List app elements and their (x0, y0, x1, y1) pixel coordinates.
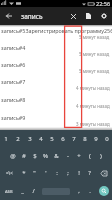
staticText: запись#7 (1, 78, 26, 85)
staticText: 7 (72, 135, 76, 143)
button[interactable]: 4 (35, 130, 46, 147)
button[interactable]: . (84, 182, 95, 200)
button[interactable]: запись#6 (0, 59, 112, 76)
button[interactable]: Backspace (95, 164, 112, 182)
staticText: ) (100, 152, 102, 160)
staticText: 3 минуты назад (76, 121, 110, 127)
button[interactable]: / (28, 182, 39, 200)
staticText: : (56, 169, 58, 177)
button[interactable]: 0 (101, 130, 112, 147)
staticText: , (78, 187, 80, 195)
button[interactable]: Search (99, 186, 109, 196)
staticText: " (33, 169, 36, 177)
staticText: - (67, 152, 69, 160)
staticText: _ (21, 187, 24, 195)
button[interactable]: АБВ (0, 182, 17, 200)
staticText: ( (89, 152, 91, 160)
button[interactable]: ! (73, 164, 84, 182)
staticText: запись#5Зарегистрировать программу256:..… (1, 27, 112, 34)
button[interactable]: 1 (0, 130, 12, 147)
button[interactable]: ) (95, 147, 106, 164)
staticText: & (54, 152, 59, 160)
staticText: 4 минуты назад (76, 103, 110, 109)
staticText: запись#8 (1, 96, 26, 103)
button[interactable]: 5 (46, 130, 57, 147)
button[interactable]: : (51, 164, 62, 182)
staticText: 5 минут назад (79, 51, 110, 57)
staticText: @ (10, 152, 16, 160)
staticText: =\< (6, 170, 13, 176)
button[interactable]: запись#4 (0, 42, 112, 59)
button[interactable]: 9 (90, 130, 101, 147)
staticText: ' (45, 169, 47, 177)
staticText: ; (67, 169, 69, 177)
staticText: / (32, 187, 35, 195)
button[interactable]: Notes (83, 7, 93, 25)
staticText: 6 (61, 135, 65, 143)
button[interactable]: , (73, 182, 84, 200)
staticText: % (43, 152, 48, 160)
staticText: 0 (105, 135, 109, 143)
button[interactable]: ? (84, 164, 95, 182)
staticText: 9 (94, 135, 98, 143)
staticText: 2 (16, 135, 20, 143)
staticText: запись (21, 12, 43, 21)
button[interactable]: % (40, 147, 51, 164)
button[interactable]: + (73, 147, 84, 164)
staticText: 8 (83, 135, 87, 143)
staticText: + (77, 152, 81, 160)
button[interactable]: Back (0, 7, 18, 25)
button[interactable]: @ (7, 147, 18, 164)
button[interactable]: # (18, 147, 29, 164)
button[interactable]: 6 (57, 130, 68, 147)
staticText: ! (78, 169, 80, 177)
button[interactable]: запись#7 (0, 76, 112, 94)
button[interactable]: запись#8 (0, 94, 112, 112)
button[interactable]: запись#9 (0, 112, 112, 130)
staticText: 4 минуты назад (76, 85, 110, 91)
button[interactable]: - (62, 147, 73, 164)
staticText: 22:56 (96, 0, 111, 7)
staticText: 5 минут назад (79, 68, 110, 74)
staticText: 4 (39, 135, 43, 143)
button[interactable]: 8 (79, 130, 90, 147)
button[interactable]: 3 (24, 130, 35, 147)
staticText: $ (33, 152, 37, 160)
button[interactable]: запись#5Зарегистрировать программу256:..… (0, 25, 112, 42)
staticText: ? (88, 169, 91, 177)
staticText: 5 (50, 135, 54, 143)
staticText: АБВ (5, 189, 13, 194)
button[interactable]: 7 (68, 130, 79, 147)
staticText: * (22, 169, 26, 177)
staticText: # (22, 152, 26, 160)
staticText: запись#9 (1, 114, 26, 121)
staticText: запись#4 (1, 44, 26, 51)
button[interactable]: * (18, 164, 29, 182)
button[interactable]: ' (40, 164, 51, 182)
button[interactable]: Clear (69, 7, 78, 25)
button[interactable]: 2 (12, 130, 24, 147)
staticText: запись#6 (1, 61, 26, 68)
button[interactable]: " (29, 164, 40, 182)
button[interactable]: ( (84, 147, 95, 164)
button[interactable]: $ (29, 147, 40, 164)
staticText: . (89, 187, 91, 195)
button[interactable]: Settings (98, 7, 110, 25)
button[interactable]: =\< (0, 164, 18, 182)
staticText: 5 минут назад (79, 34, 110, 40)
button[interactable]: _ (17, 182, 28, 200)
staticText: 1 (4, 135, 8, 143)
button[interactable]: ; (62, 164, 73, 182)
staticText: 3 (28, 135, 32, 143)
button[interactable]: & (51, 147, 62, 164)
